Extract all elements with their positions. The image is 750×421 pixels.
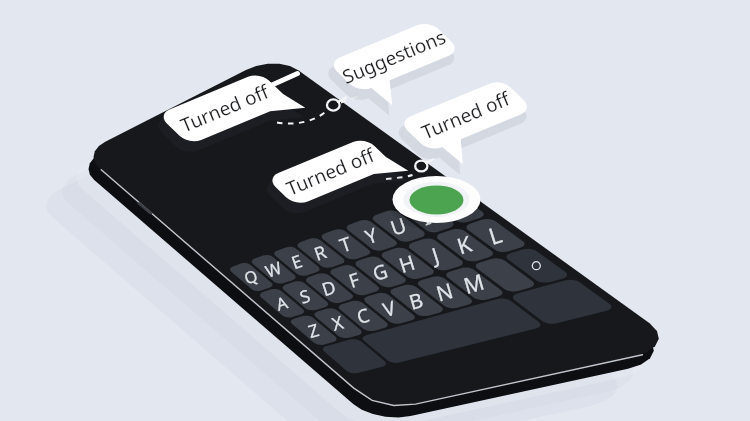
button[interactable]: Voice typing illustration bbox=[0, 0, 750, 421]
